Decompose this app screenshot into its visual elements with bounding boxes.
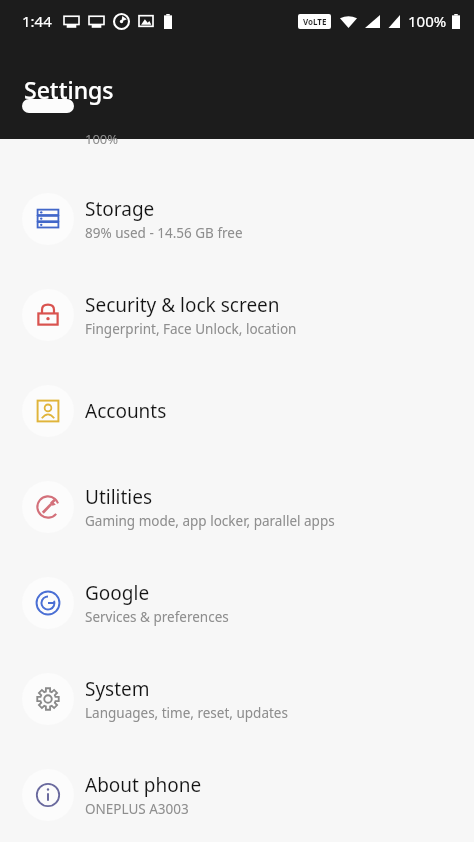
- button[interactable]: Google: [0, 571, 474, 634]
- staticText: 1:44: [22, 11, 52, 31]
- other: System: [22, 673, 74, 725]
- staticText: 100%: [408, 11, 447, 31]
- staticText: 89% used - 14.56 GB free: [85, 224, 243, 242]
- other: Storage: [22, 193, 74, 245]
- button[interactable]: About phone: [0, 763, 474, 826]
- staticText: Google: [85, 580, 150, 606]
- other: About phone: [22, 769, 74, 821]
- button[interactable]: System: [0, 667, 474, 730]
- other: Utilities: [22, 481, 74, 533]
- other: Accounts: [22, 385, 74, 437]
- button[interactable]: Accounts: [0, 379, 474, 442]
- staticText: Gaming mode, app locker, parallel apps: [85, 512, 335, 530]
- staticText: 100%: [85, 130, 119, 144]
- staticText: Security & lock screen: [85, 292, 280, 318]
- staticText: Settings: [24, 74, 114, 105]
- button[interactable]: Utilities: [0, 475, 474, 538]
- other: Google: [22, 577, 74, 629]
- other: Security: [22, 289, 74, 341]
- button[interactable]: Storage: [0, 187, 474, 250]
- staticText: About phone: [85, 772, 202, 798]
- staticText: System: [85, 676, 150, 702]
- staticText: Utilities: [85, 484, 153, 510]
- staticText: Accounts: [85, 398, 167, 424]
- staticText: Services & preferences: [85, 608, 229, 626]
- staticText: Languages, time, reset, updates: [85, 704, 288, 722]
- staticText: Fingerprint, Face Unlock, location: [85, 320, 297, 338]
- staticText: VoLTE: [303, 16, 327, 27]
- staticText: Storage: [85, 196, 155, 222]
- staticText: ONEPLUS A3003: [85, 800, 189, 818]
- button[interactable]: Security: [0, 283, 474, 346]
